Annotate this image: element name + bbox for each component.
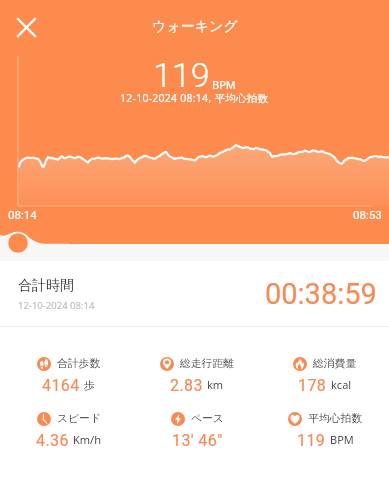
staticText: 歩 (84, 378, 95, 392)
staticText: スピード (57, 412, 101, 426)
staticText: 00:38:59 (265, 277, 377, 311)
staticText: BPM (330, 432, 354, 447)
button[interactable]: 総消費量 (261, 357, 389, 395)
button[interactable]: スピード (4, 412, 133, 450)
staticText: 12-10-2024 08:14, 平均心拍数 (120, 91, 269, 105)
staticText: 合計歩数 (57, 357, 101, 371)
staticText: BPM (212, 77, 236, 92)
staticText: kcal (331, 377, 352, 392)
staticText: 総走行距離 (180, 357, 234, 371)
button[interactable]: 合計歩数 (4, 357, 133, 395)
staticText: ウォーキング (152, 18, 238, 36)
staticText: 119 (153, 55, 210, 95)
staticText: Km/h (73, 432, 101, 447)
button[interactable]: 総走行距離 (133, 357, 261, 395)
button[interactable]: ペース (133, 412, 261, 450)
staticText: 12-10-2024 08:14 (18, 299, 95, 312)
button[interactable]: Close (9, 10, 43, 44)
staticText: 合計時間 (18, 277, 74, 295)
staticText: 08:14 (8, 208, 37, 221)
staticText: 平均心拍数 (308, 412, 362, 426)
button[interactable]: 合計時間 (0, 261, 389, 326)
button[interactable]: Scrubber (8, 233, 28, 253)
staticText: km (207, 377, 224, 392)
staticText: 2.83 (170, 376, 203, 395)
staticText: 13' 46'' (172, 431, 223, 450)
staticText: 4164 (42, 376, 80, 395)
staticText: ペース (191, 412, 224, 426)
staticText: 119 (297, 431, 326, 450)
staticText: 08:53 (353, 208, 382, 221)
staticText: 総消費量 (313, 357, 357, 371)
staticText: 4.36 (36, 431, 69, 450)
button[interactable]: 平均心拍数 (261, 412, 389, 450)
staticText: 178 (298, 376, 327, 395)
